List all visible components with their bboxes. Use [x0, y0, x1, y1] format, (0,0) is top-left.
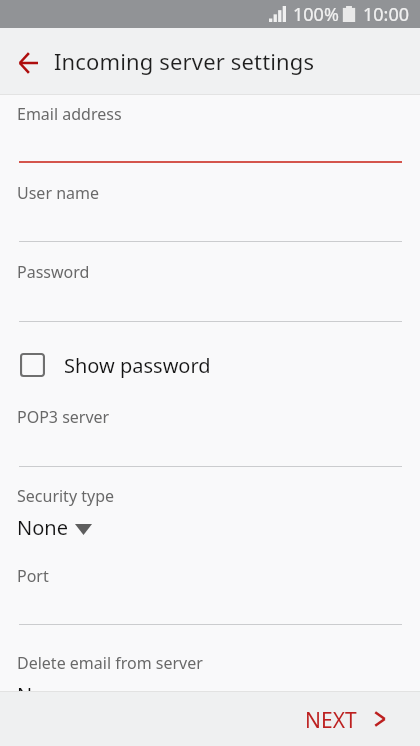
button[interactable] [0, 162, 420, 240]
button[interactable] [0, 400, 420, 471]
staticText: NEXT [305, 706, 357, 735]
staticText: Incoming server settings [54, 46, 315, 76]
staticText: Security type [17, 485, 115, 507]
staticText: Password [17, 261, 90, 283]
staticText: User name [17, 182, 100, 204]
staticText: Delete email from server [17, 652, 203, 674]
button[interactable]: NEXT [290, 691, 420, 746]
staticText: 100% [293, 2, 339, 27]
staticText: Port [17, 565, 49, 587]
staticText: Show password [64, 352, 211, 379]
button[interactable] [0, 242, 420, 320]
staticText: POP3 server [17, 406, 110, 428]
button[interactable] [0, 626, 420, 691]
staticText: None [17, 514, 68, 541]
button[interactable]: Show password [0, 339, 420, 391]
button[interactable] [0, 472, 420, 570]
staticText: 10:00 [363, 2, 410, 27]
button[interactable] [0, 95, 420, 161]
staticText: Never [17, 681, 73, 691]
button[interactable] [0, 571, 420, 625]
staticText: Email address [17, 103, 122, 125]
button[interactable]: Navigate up [0, 28, 56, 94]
